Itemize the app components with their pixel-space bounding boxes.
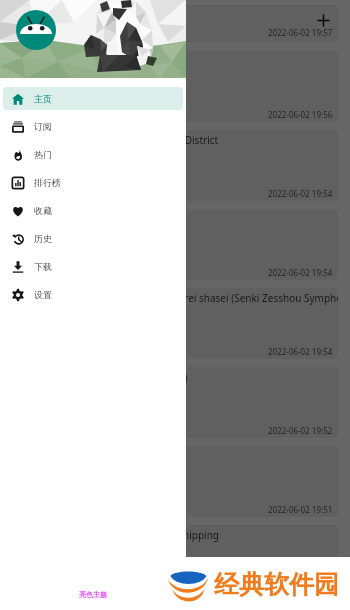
staticText: Hoshi ga Matataku Konna Yoru ni Shipping bbox=[18, 528, 219, 542]
button[interactable]: 收藏 bbox=[3, 199, 183, 222]
button[interactable]: Kanashimi wo Yasashisa ni Anything bbox=[12, 367, 338, 438]
button[interactable]: 2022-06-02 19:56 bbox=[12, 51, 338, 122]
staticText: Bokura wa Ima no Naka de Nerima District bbox=[18, 133, 219, 147]
button[interactable]: 2022-06-02 19:54 bbox=[12, 209, 338, 280]
button[interactable]: 2022-06-02 19:51 bbox=[12, 446, 338, 517]
staticText: 2022-06-02 19:57 bbox=[268, 27, 333, 38]
staticText: 热门 bbox=[34, 149, 52, 160]
staticText: 2022-06-02 19:54 bbox=[268, 346, 333, 357]
button[interactable]: 亮色主题 bbox=[79, 590, 107, 599]
button[interactable]: Bokura wa Ima no Naka de Nerima District bbox=[12, 130, 338, 201]
staticText: Kanashimi wo Yasashisa ni Anything bbox=[18, 370, 188, 384]
staticText: Zettai Unmei Mokushiroku chan keirei sha… bbox=[18, 291, 338, 305]
staticText: 主页 bbox=[34, 93, 52, 104]
staticText: 订阅 bbox=[34, 121, 52, 132]
staticText: 2022-06-02 19:51 bbox=[268, 504, 333, 515]
button[interactable]: Profile bbox=[16, 10, 56, 50]
button[interactable]: 下载 bbox=[3, 255, 183, 278]
button[interactable]: Hoshi ga Matataku Konna Yoru ni Shipping bbox=[12, 525, 338, 596]
staticText: 设置 bbox=[34, 289, 52, 300]
button[interactable]: 订阅 bbox=[3, 115, 183, 138]
button[interactable]: Zettai Unmei Mokushiroku chan keirei sha… bbox=[12, 288, 338, 359]
button[interactable]: 热门 bbox=[3, 143, 183, 166]
button[interactable]: 排行榜 bbox=[3, 171, 183, 194]
button[interactable]: 主页 bbox=[3, 87, 183, 110]
staticText: 2022-06-02 19:52 bbox=[268, 425, 333, 436]
button[interactable]: 2022-06-02 19:57 bbox=[12, 5, 338, 42]
staticText: 下载 bbox=[34, 261, 52, 272]
staticText: 历史 bbox=[34, 233, 52, 244]
button[interactable]: 设置 bbox=[3, 283, 183, 306]
staticText: 收藏 bbox=[34, 205, 52, 216]
button[interactable]: 历史 bbox=[3, 227, 183, 250]
staticText: 2022-06-02 19:54 bbox=[268, 267, 333, 278]
staticText: 2022-06-02 19:56 bbox=[268, 109, 333, 120]
staticText: 2022-06-02 19:54 bbox=[268, 188, 333, 199]
staticText: 经典软件园 bbox=[214, 569, 339, 600]
staticText: 排行榜 bbox=[34, 177, 61, 188]
button[interactable]: Add bbox=[309, 6, 338, 35]
